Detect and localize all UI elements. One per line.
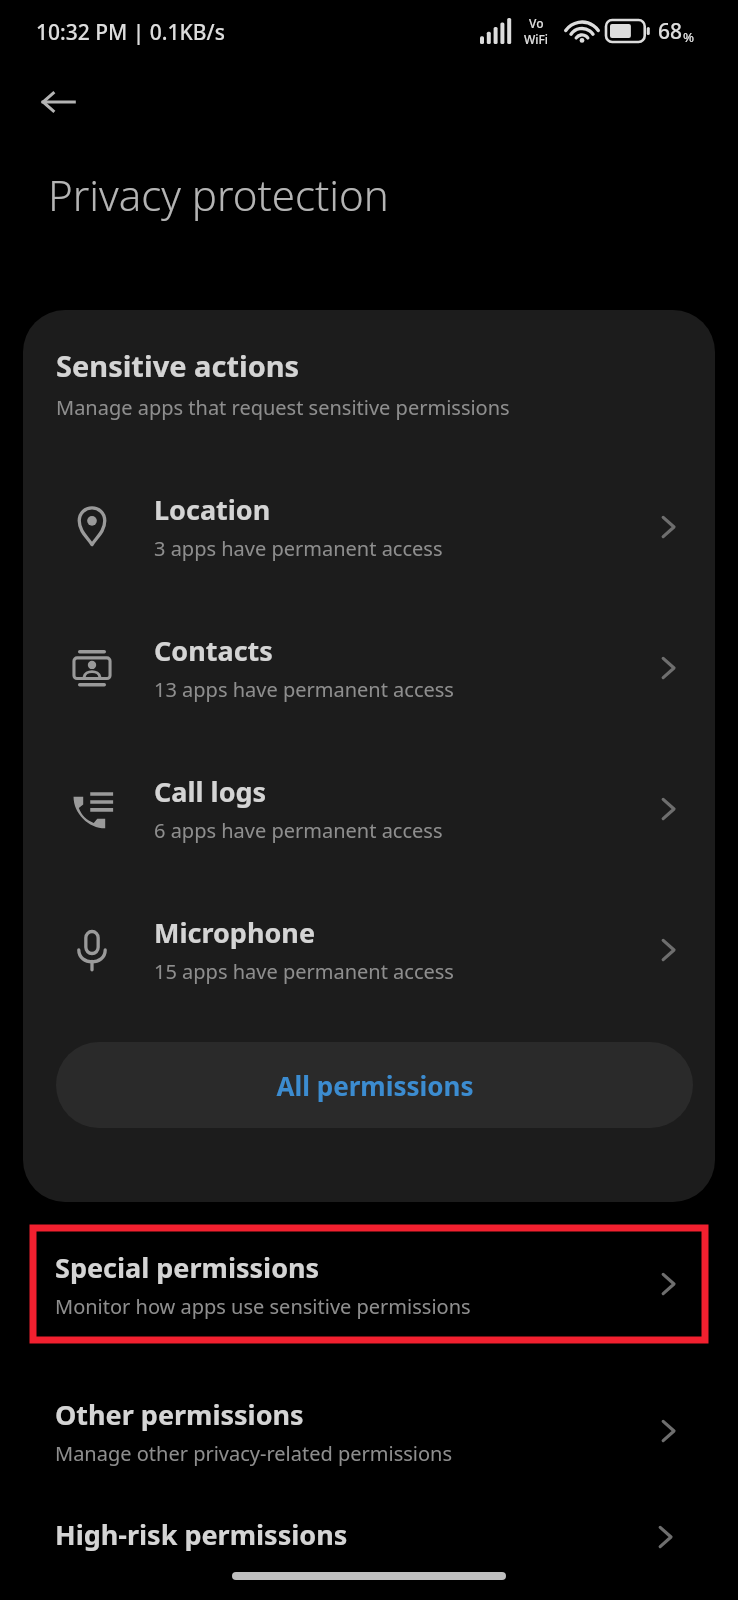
button[interactable]: Microphone (23, 879, 715, 1020)
staticText: 10:32 PM | 0.1KB/s (36, 18, 225, 47)
staticText: Microphone (154, 914, 316, 951)
button[interactable]: Location (23, 456, 715, 597)
staticText: Contacts (154, 632, 273, 669)
staticText: Monitor how apps use sensitive permissio… (55, 1293, 471, 1320)
staticText: 15 apps have permanent access (154, 958, 454, 985)
staticText: Special permissions (55, 1249, 320, 1286)
staticText: 6 apps have permanent access (154, 817, 443, 844)
staticText: % (683, 28, 695, 46)
button[interactable]: Other permissions (0, 1372, 738, 1490)
staticText: Privacy protection (48, 166, 389, 223)
staticText: Location (154, 491, 271, 528)
staticText: 13 apps have permanent access (154, 676, 454, 703)
button[interactable]: All permissions (56, 1042, 693, 1128)
button[interactable]: High-risk permissions (0, 1510, 738, 1600)
button[interactable]: Contacts (23, 597, 715, 738)
staticText: WiFi (524, 31, 549, 47)
staticText: 3 apps have permanent access (154, 535, 443, 562)
staticText: Other permissions (55, 1396, 304, 1433)
button[interactable]: Special permissions (33, 1228, 705, 1340)
staticText: Manage apps that request sensitive permi… (56, 394, 510, 421)
button[interactable]: Back (28, 72, 88, 132)
staticText: 68 (658, 17, 683, 46)
button[interactable]: Call logs (23, 738, 715, 879)
staticText: Vo (529, 15, 544, 31)
staticText: Manage other privacy-related permissions (55, 1440, 453, 1467)
staticText: Call logs (154, 773, 267, 810)
staticText: Sensitive actions (56, 346, 300, 385)
staticText: All permissions (276, 1068, 474, 1103)
staticText: High-risk permissions (55, 1516, 348, 1553)
